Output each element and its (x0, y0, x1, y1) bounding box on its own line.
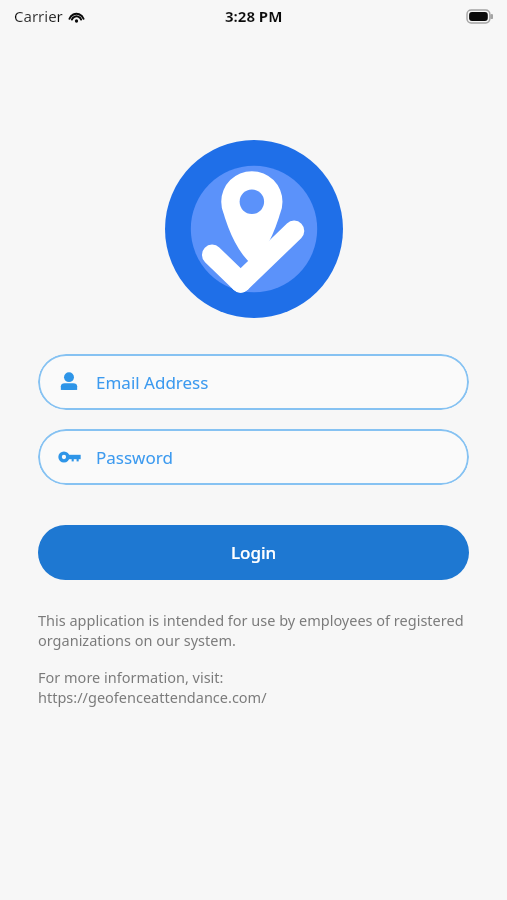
staticText: Email Address (96, 371, 209, 394)
button[interactable]: Email Address (38, 354, 469, 410)
button[interactable]: Password (38, 429, 469, 485)
staticText: For more information, visit: https://geo… (38, 667, 267, 708)
staticText: Password (96, 446, 173, 469)
staticText: Carrier (14, 6, 63, 26)
staticText: 3:28 PM (225, 6, 283, 26)
staticText: Login (231, 541, 277, 564)
button[interactable]: Login (38, 525, 469, 580)
staticText: This application is intended for use by … (38, 610, 469, 651)
